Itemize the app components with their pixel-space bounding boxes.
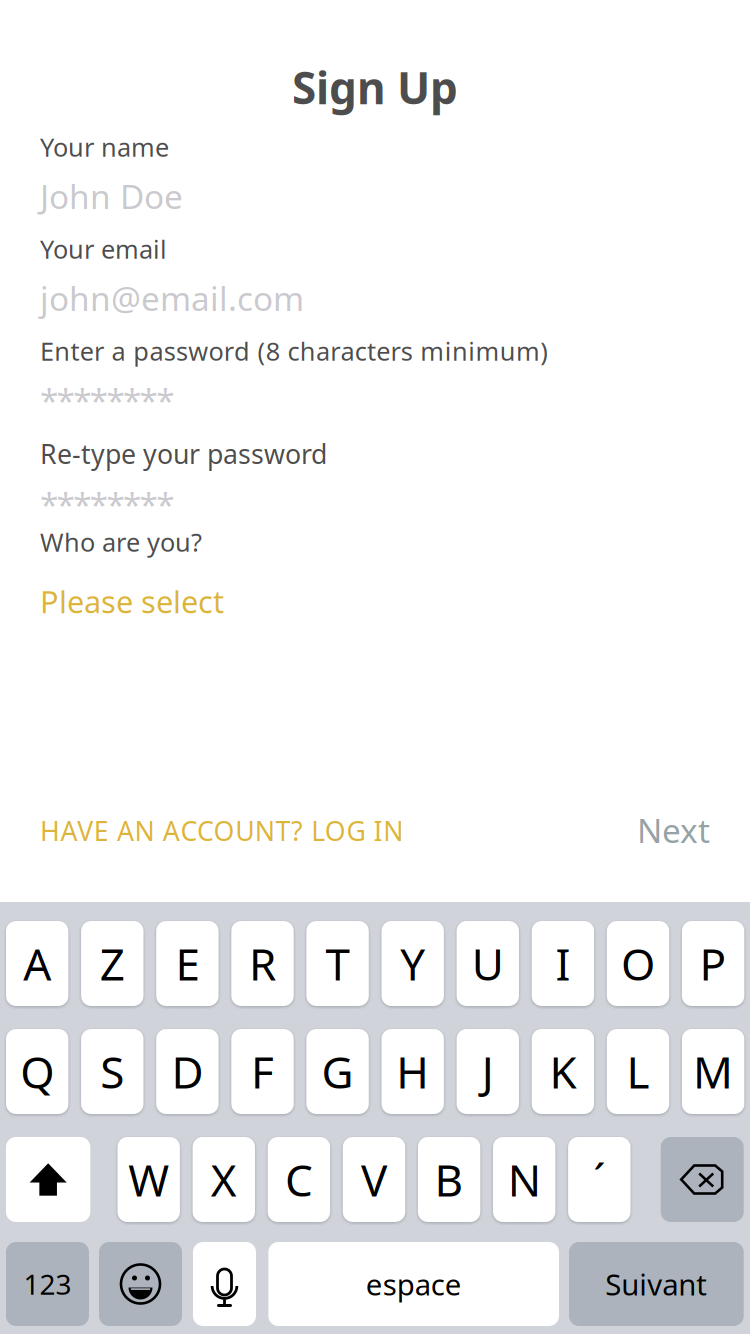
button[interactable]: J bbox=[457, 1029, 519, 1114]
button[interactable]: 123 bbox=[6, 1242, 89, 1326]
button[interactable]: Delete bbox=[661, 1137, 744, 1222]
button[interactable]: B bbox=[418, 1137, 480, 1222]
staticText: C bbox=[285, 1150, 313, 1209]
staticText: Who are you? bbox=[40, 525, 202, 559]
button[interactable]: P bbox=[682, 921, 744, 1006]
staticText: Please select bbox=[40, 581, 224, 622]
staticText: Re-type your password bbox=[40, 436, 327, 471]
staticText: D bbox=[171, 1042, 203, 1101]
button[interactable]: Please select bbox=[40, 581, 224, 622]
button[interactable]: Next bbox=[610, 808, 710, 852]
staticText: john@email.com bbox=[40, 276, 304, 320]
staticText: Suivant bbox=[605, 1264, 707, 1303]
button[interactable]: Dictation bbox=[193, 1242, 256, 1326]
button[interactable]: X bbox=[193, 1137, 255, 1222]
staticText: T bbox=[326, 934, 350, 993]
button[interactable]: I bbox=[532, 921, 594, 1006]
staticText: espace bbox=[366, 1264, 462, 1303]
staticText: M bbox=[693, 1042, 733, 1101]
button[interactable]: M bbox=[682, 1029, 744, 1114]
button[interactable]: Shift bbox=[6, 1137, 90, 1222]
staticText: John Doe bbox=[40, 174, 183, 218]
button[interactable]: O bbox=[607, 921, 669, 1006]
staticText: Q bbox=[20, 1042, 54, 1101]
button[interactable]: F bbox=[231, 1029, 294, 1114]
staticText: N bbox=[508, 1150, 541, 1209]
button[interactable]: T bbox=[306, 921, 369, 1006]
staticText: 123 bbox=[23, 1265, 71, 1303]
staticText: A bbox=[23, 934, 51, 993]
staticText: B bbox=[435, 1150, 464, 1209]
button[interactable]: Z bbox=[81, 921, 143, 1006]
staticText: L bbox=[626, 1042, 649, 1101]
button[interactable]: N bbox=[493, 1137, 555, 1222]
button[interactable]: C bbox=[268, 1137, 330, 1222]
staticText: E bbox=[175, 934, 199, 993]
staticText: V bbox=[361, 1150, 387, 1209]
staticText: I bbox=[555, 934, 570, 993]
button[interactable]: H bbox=[381, 1029, 444, 1114]
button[interactable]: Q bbox=[6, 1029, 68, 1114]
button[interactable]: E bbox=[156, 921, 219, 1006]
button[interactable]: HAVE AN ACCOUNT? LOG IN bbox=[40, 813, 403, 848]
button[interactable]: espace bbox=[268, 1242, 559, 1326]
staticText: S bbox=[100, 1042, 124, 1101]
button[interactable]: S bbox=[81, 1029, 143, 1114]
staticText: Enter a password (8 characters minimum) bbox=[40, 334, 548, 368]
button[interactable]: R bbox=[231, 921, 294, 1006]
staticText: ******** bbox=[40, 378, 174, 422]
staticText: W bbox=[128, 1150, 169, 1209]
button[interactable]: Sign Up bbox=[0, 58, 750, 116]
button[interactable]: U bbox=[457, 921, 519, 1006]
staticText: R bbox=[249, 934, 276, 993]
staticText: P bbox=[700, 934, 727, 993]
button[interactable]: A bbox=[6, 921, 68, 1006]
button[interactable]: G bbox=[306, 1029, 369, 1114]
staticText: Your name bbox=[40, 130, 169, 164]
button[interactable]: ´ bbox=[568, 1137, 630, 1222]
staticText: H bbox=[396, 1042, 429, 1101]
button[interactable]: L bbox=[607, 1029, 669, 1114]
staticText: F bbox=[251, 1042, 274, 1101]
staticText: ´ bbox=[593, 1150, 605, 1209]
staticText: O bbox=[621, 934, 655, 993]
staticText: X bbox=[211, 1150, 237, 1209]
button[interactable]: Suivant bbox=[569, 1242, 744, 1326]
staticText: J bbox=[482, 1042, 494, 1101]
button[interactable]: V bbox=[343, 1137, 405, 1222]
staticText: Y bbox=[400, 934, 425, 993]
button[interactable]: K bbox=[532, 1029, 594, 1114]
staticText: Your email bbox=[40, 232, 167, 266]
staticText: K bbox=[549, 1042, 576, 1101]
staticText: G bbox=[322, 1042, 354, 1101]
button[interactable]: D bbox=[156, 1029, 219, 1114]
button[interactable]: Emoji bbox=[99, 1242, 182, 1326]
staticText: U bbox=[472, 934, 504, 993]
staticText: Next bbox=[637, 808, 710, 852]
staticText: Sign Up bbox=[292, 58, 458, 116]
button[interactable]: Y bbox=[381, 921, 444, 1006]
staticText: ******** bbox=[40, 482, 174, 526]
button[interactable]: W bbox=[117, 1137, 180, 1222]
staticText: HAVE AN ACCOUNT? LOG IN bbox=[40, 813, 403, 848]
staticText: Z bbox=[100, 934, 125, 993]
